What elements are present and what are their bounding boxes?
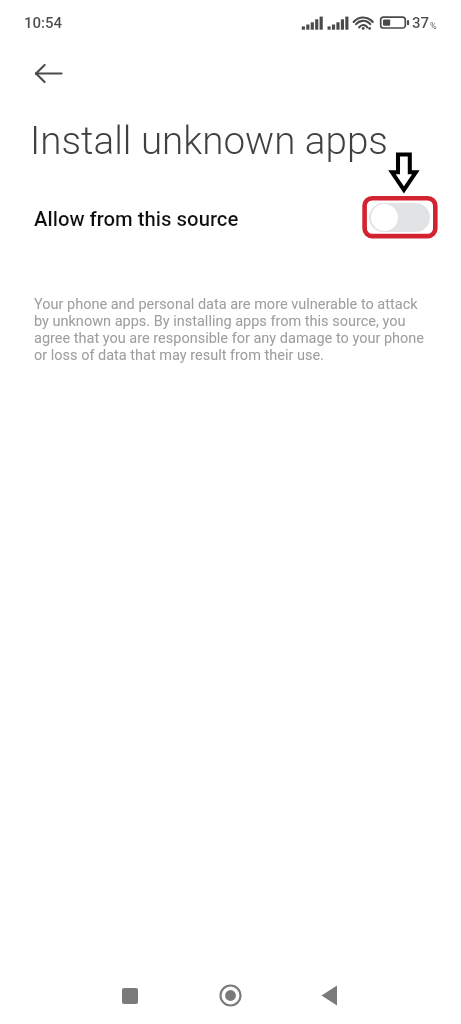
staticText: 10:54: [24, 14, 63, 32]
staticText: 37: [412, 14, 430, 32]
staticText: %: [430, 21, 437, 32]
staticText: Allow from this source: [34, 207, 239, 231]
button[interactable]: Allow from this source: [0, 192, 461, 244]
button[interactable]: Back: [304, 971, 353, 1020]
button[interactable]: Recent apps: [105, 971, 154, 1020]
staticText: Your phone and personal data are more vu…: [34, 296, 429, 364]
button[interactable]: Home: [206, 971, 255, 1020]
button[interactable]: Navigate up: [23, 49, 71, 97]
staticText: Install unknown apps: [30, 118, 388, 163]
